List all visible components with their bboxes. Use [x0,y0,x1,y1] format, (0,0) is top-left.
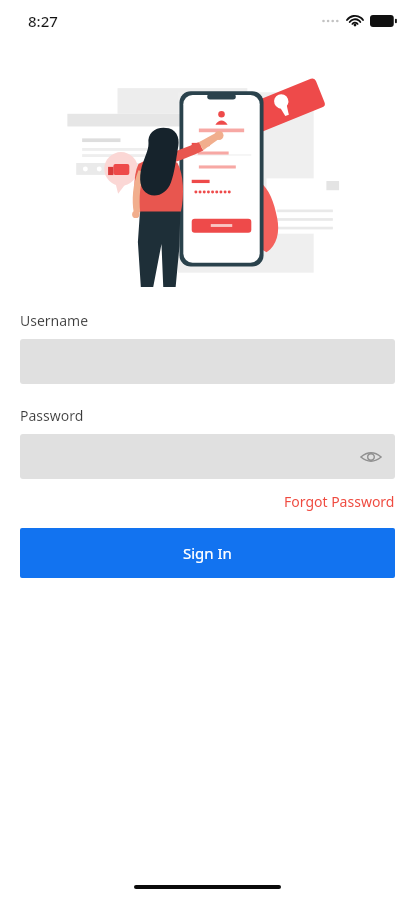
staticText: 8:27 [28,11,58,31]
staticText: Username [20,311,89,330]
button[interactable]: Show password [20,434,395,479]
button[interactable]: Forgot Password [284,492,395,511]
staticText: Forgot Password [284,492,395,511]
staticText: Sign In [183,543,232,563]
staticText: Password [20,406,84,425]
button[interactable]: Show password [355,441,387,473]
button[interactable]: Sign In [20,528,395,578]
